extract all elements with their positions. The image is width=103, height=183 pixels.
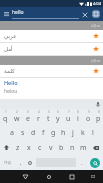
- staticText: 1: [5, 110, 7, 114]
- staticText: w: [14, 114, 20, 124]
- button[interactable]: d: [28, 125, 38, 140]
- staticText: v: [49, 143, 53, 153]
- staticText: s: [21, 128, 25, 138]
- staticText: r: [37, 114, 40, 124]
- button[interactable]: Add to favorites: [91, 66, 101, 76]
- staticText: 7: [68, 110, 70, 114]
- button[interactable]: عربي: [0, 30, 103, 42]
- staticText: b: [59, 143, 64, 153]
- button[interactable]: Voice input: [93, 99, 103, 109]
- button[interactable]: ,: [16, 155, 25, 170]
- staticText: m: [80, 143, 87, 153]
- button[interactable]: ?1☺: [0, 155, 16, 170]
- staticText: 6: [57, 110, 59, 114]
- button[interactable]: 7: [63, 109, 73, 125]
- staticText: p: [96, 114, 101, 124]
- button[interactable]: 3: [22, 109, 33, 125]
- button[interactable]: hello: [12, 9, 79, 19]
- staticText: 5: [48, 110, 50, 114]
- button[interactable]: Add to favorites: [91, 44, 101, 54]
- button[interactable]: Clear query: [79, 9, 90, 20]
- staticText: e: [26, 114, 30, 124]
- staticText: 8: [77, 110, 79, 114]
- button[interactable]: 2: [11, 109, 22, 125]
- staticText: a: [10, 128, 14, 138]
- staticText: helou: [4, 88, 18, 95]
- staticText: f: [42, 128, 45, 138]
- button[interactable]: Recent apps: [60, 170, 83, 183]
- staticText: q: [3, 114, 8, 124]
- button[interactable]: a: [6, 125, 17, 140]
- staticText: k: [81, 128, 85, 138]
- staticText: t: [47, 114, 50, 124]
- staticText: d: [31, 128, 36, 138]
- button[interactable]: c: [34, 140, 45, 155]
- button[interactable]: h: [58, 125, 68, 140]
- button[interactable]: k: [78, 125, 88, 140]
- button[interactable]: 5: [43, 109, 53, 125]
- staticText: كلمة: [4, 68, 91, 74]
- staticText: i: [77, 114, 79, 124]
- button[interactable]: 0: [93, 109, 103, 125]
- staticText: Hello: [4, 79, 18, 86]
- button[interactable]: Emoji: [25, 155, 35, 170]
- button[interactable]: z: [13, 140, 23, 155]
- button[interactable]: 9: [83, 109, 93, 125]
- staticText: j: [72, 128, 74, 138]
- button[interactable]: v: [45, 140, 56, 155]
- button[interactable]: كلمة: [0, 65, 103, 77]
- button[interactable]: 1: [0, 109, 11, 125]
- staticText: hello: [12, 9, 24, 16]
- button[interactable]: Add to favorites: [91, 31, 101, 41]
- staticText: h: [61, 128, 66, 138]
- staticText: 9: [88, 110, 90, 114]
- button[interactable]: 6: [53, 109, 63, 125]
- staticText: 2: [16, 110, 18, 114]
- button[interactable]: .: [77, 155, 86, 170]
- button[interactable]: g: [48, 125, 58, 140]
- button[interactable]: n: [67, 140, 78, 155]
- staticText: y: [56, 114, 60, 124]
- button[interactable]: Back: [14, 170, 37, 183]
- button[interactable]: Backspace: [89, 140, 103, 155]
- staticText: x: [27, 143, 31, 153]
- button[interactable]: Hello: [0, 78, 103, 96]
- staticText: l: [92, 128, 94, 138]
- button[interactable]: s: [17, 125, 28, 140]
- button[interactable]: Search: [86, 155, 103, 170]
- button[interactable]: b: [56, 140, 67, 155]
- button[interactable]: أمل: [0, 43, 103, 55]
- staticText: ,: [20, 159, 22, 167]
- button[interactable]: 4: [33, 109, 43, 125]
- staticText: .: [81, 159, 83, 167]
- staticText: أمل: [4, 46, 91, 52]
- staticText: u: [66, 114, 71, 124]
- button[interactable]: Change language: [90, 8, 102, 20]
- button[interactable]: l: [88, 125, 98, 140]
- button[interactable]: Navigate up: [1, 9, 12, 20]
- button[interactable]: 8: [73, 109, 83, 125]
- staticText: z: [16, 143, 20, 153]
- staticText: g: [51, 128, 56, 138]
- button[interactable]: f: [38, 125, 48, 140]
- staticText: c: [38, 143, 42, 153]
- button[interactable]: j: [68, 125, 78, 140]
- button[interactable]: Home: [37, 170, 60, 183]
- staticText: ?1☺: [4, 160, 12, 165]
- staticText: 3: [27, 110, 29, 114]
- staticText: 0: [98, 110, 100, 114]
- button[interactable]: x: [23, 140, 34, 155]
- button[interactable]: m: [78, 140, 89, 155]
- staticText: o: [86, 114, 91, 124]
- staticText: n: [70, 143, 75, 153]
- button[interactable]: Shift: [0, 140, 13, 155]
- staticText: 4: [38, 110, 40, 114]
- staticText: 4:04: [93, 1, 101, 6]
- button[interactable]: Switch input method: [83, 170, 103, 183]
- staticText: عربي: [4, 33, 91, 39]
